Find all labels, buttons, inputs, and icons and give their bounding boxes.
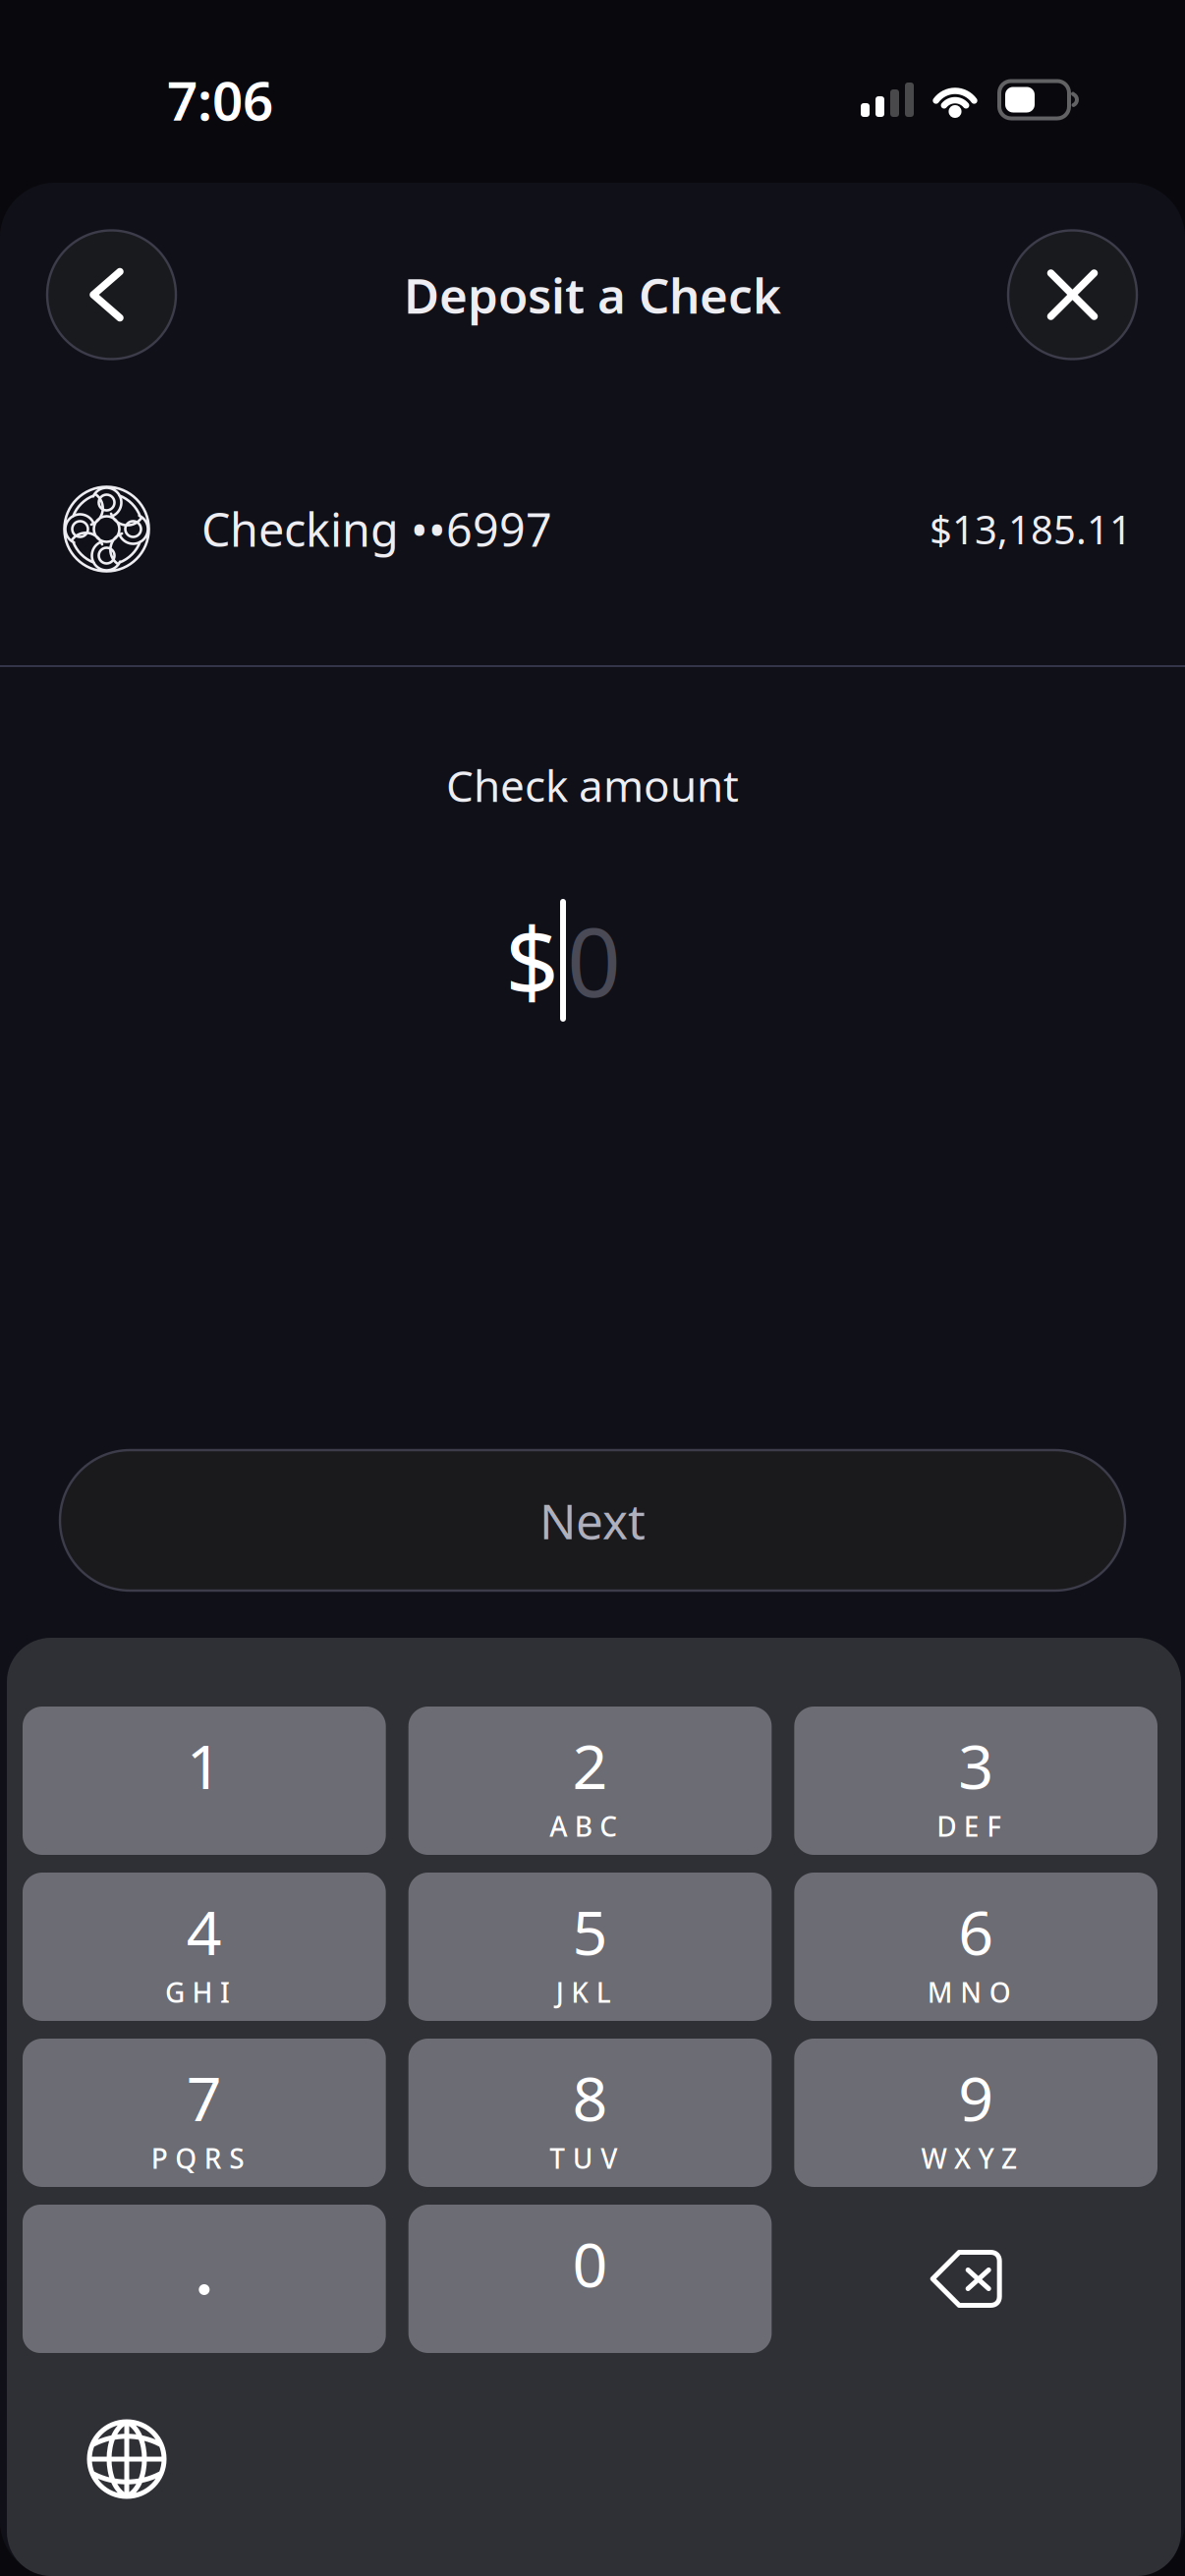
button[interactable]: 6 <box>794 1873 1157 2021</box>
staticText: WXYZ <box>921 2140 1017 2176</box>
staticText: 3 <box>958 1724 994 1806</box>
staticText: Check amount <box>446 756 739 814</box>
button[interactable]: Back <box>47 230 176 359</box>
button[interactable]: Decimal point <box>23 2205 386 2353</box>
staticText: 6 <box>958 1890 994 1972</box>
button[interactable]: 7 <box>23 2039 386 2187</box>
staticText: Checking ••6997 <box>201 499 552 560</box>
button[interactable]: 1 <box>23 1707 386 1855</box>
button[interactable]: Close <box>1008 230 1137 359</box>
staticText: 8 <box>572 2056 608 2138</box>
button[interactable]: 9 <box>794 2039 1157 2187</box>
staticText: ABC <box>549 1808 617 1844</box>
staticText: 1 <box>186 1724 222 1806</box>
staticText: 7:06 <box>167 64 273 135</box>
staticText: Next <box>539 1488 646 1552</box>
staticText: JKL <box>556 1974 611 2010</box>
button[interactable]: 8 <box>408 2039 772 2187</box>
staticText: 4 <box>186 1890 222 1972</box>
staticText: Deposit a Check <box>404 263 781 327</box>
button[interactable]: 0 <box>408 2205 772 2353</box>
staticText: 7 <box>186 2056 222 2138</box>
staticText: TUV <box>549 2140 617 2176</box>
staticText: PQRS <box>151 2140 244 2176</box>
button[interactable]: Switch keyboard <box>86 2419 167 2499</box>
button[interactable]: Next <box>0 1450 1185 1591</box>
button[interactable]: 2 <box>408 1707 772 1855</box>
button[interactable]: Delete <box>794 2205 1157 2353</box>
staticText: 2 <box>572 1724 608 1806</box>
button[interactable]: 4 <box>23 1873 386 2021</box>
staticText: DEF <box>937 1808 1002 1844</box>
staticText: 5 <box>572 1890 608 1972</box>
staticText: 0 <box>567 898 621 1023</box>
button[interactable]: Checking ••6997 <box>0 407 1185 665</box>
staticText: $13,185.11 <box>930 503 1132 555</box>
staticText: GHI <box>165 1974 230 2010</box>
staticText: MNO <box>927 1974 1011 2010</box>
staticText: $ <box>505 898 559 1023</box>
staticText: 0 <box>572 2222 608 2304</box>
button[interactable]: 3 <box>794 1707 1157 1855</box>
staticText: 9 <box>958 2056 994 2138</box>
button[interactable]: 5 <box>408 1873 772 2021</box>
